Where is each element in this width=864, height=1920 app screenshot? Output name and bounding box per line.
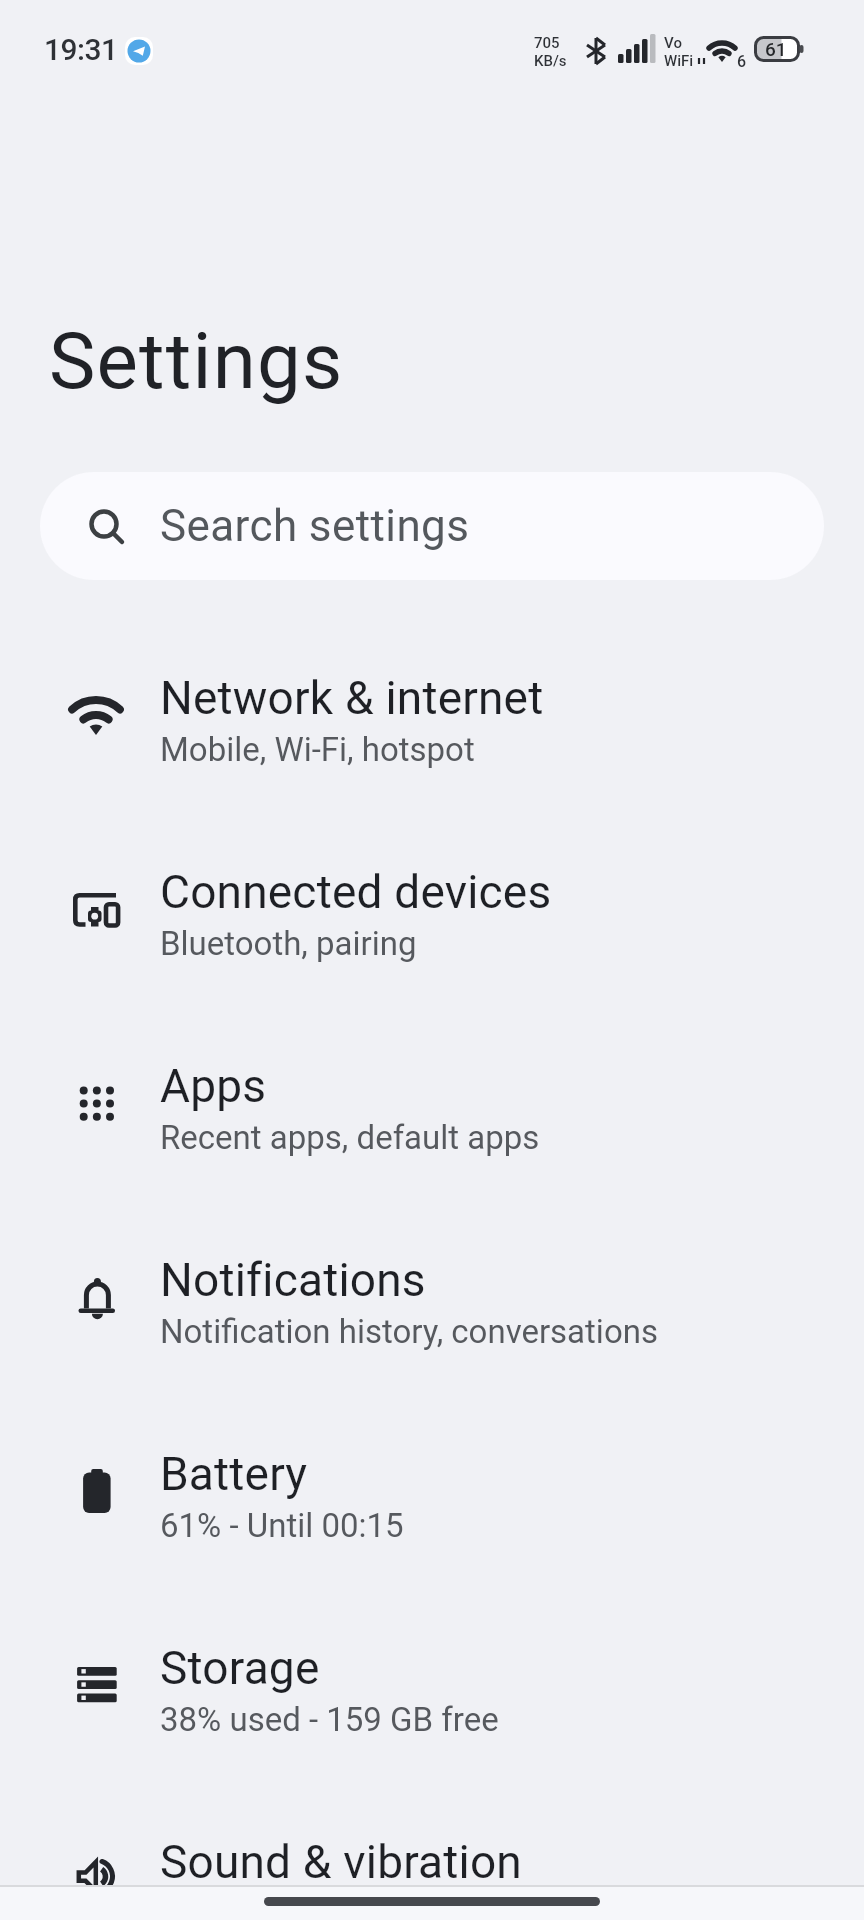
staticText: Connected devices (160, 865, 552, 919)
staticText: Recent apps, default apps (160, 1118, 540, 1157)
button[interactable]: Connected devices (0, 817, 864, 1011)
button[interactable]: Apps (0, 1011, 864, 1205)
button[interactable]: Sound & vibration (0, 1787, 864, 1920)
staticText: Notification history, conversations (160, 1312, 658, 1351)
staticText: Storage (160, 1641, 320, 1695)
staticText: 705 (534, 34, 560, 52)
button[interactable]: Storage (0, 1593, 864, 1787)
button[interactable]: Battery (0, 1399, 864, 1593)
staticText: 61% - Until 00:15 (160, 1506, 404, 1545)
staticText: Search settings (160, 500, 470, 552)
staticText: 6 (737, 52, 747, 71)
staticText: Vo (664, 34, 682, 52)
staticText: 61 (765, 38, 787, 60)
button[interactable]: Search settings (40, 472, 824, 580)
staticText: Mobile, Wi-Fi, hotspot (160, 730, 475, 769)
staticText: Apps (160, 1059, 267, 1113)
staticText: Sound & vibration (160, 1835, 522, 1889)
staticText: Battery (160, 1447, 308, 1501)
staticText: Volume, haptics, Do Not Disturb (160, 1894, 625, 1920)
staticText: Network & internet (160, 671, 544, 725)
staticText: Bluetooth, pairing (160, 924, 417, 963)
staticText: 19:31 (44, 32, 118, 67)
staticText: KB/s (534, 52, 567, 70)
button[interactable] (264, 1897, 600, 1906)
button[interactable]: Notifications (0, 1205, 864, 1399)
button[interactable]: Network & internet (0, 623, 864, 817)
staticText: Notifications (160, 1253, 426, 1307)
staticText: WiFi (664, 52, 694, 70)
staticText: Settings (49, 316, 344, 407)
staticText: 38% used - 159 GB free (160, 1700, 499, 1739)
